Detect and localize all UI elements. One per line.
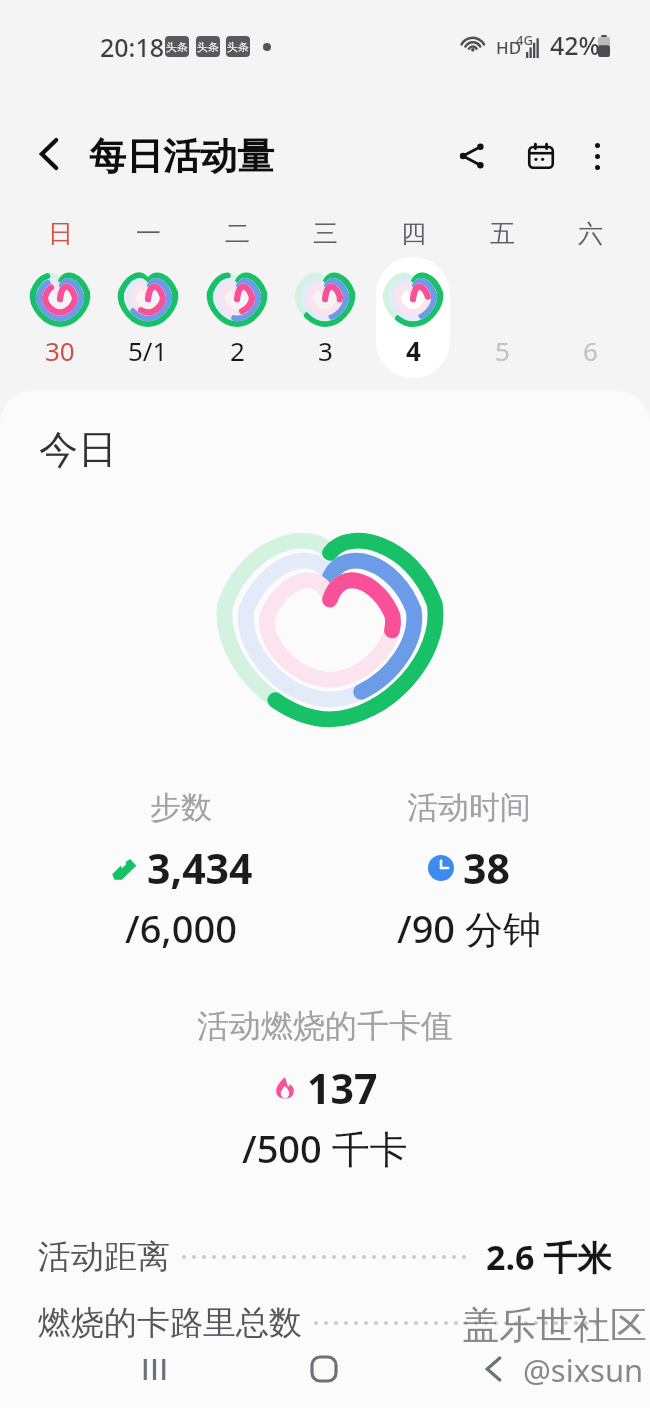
staticText: 2 xyxy=(230,333,245,367)
staticText: /6,000 xyxy=(125,902,237,954)
button[interactable]: 4 xyxy=(377,333,449,367)
button[interactable]: 6 xyxy=(554,333,626,367)
staticText: 盖乐世社区 xyxy=(462,1302,647,1349)
button[interactable]: 2 xyxy=(201,333,273,367)
button[interactable]: Home xyxy=(296,1341,352,1397)
staticText: 30 xyxy=(45,333,75,367)
button[interactable]: Recent apps xyxy=(126,1341,182,1397)
button[interactable]: 三 xyxy=(295,218,355,248)
button[interactable]: 3 xyxy=(289,333,361,367)
staticText: 三 xyxy=(313,218,338,248)
staticText: 20:18 xyxy=(100,30,165,64)
staticText: 头条 xyxy=(227,40,249,54)
staticText: HD xyxy=(496,36,522,59)
button[interactable]: 一 xyxy=(118,218,178,248)
staticText: 2.6 千米 xyxy=(486,1234,612,1280)
staticText: 步数 xyxy=(150,788,212,827)
staticText: 137 xyxy=(307,1060,378,1116)
staticText: 5 xyxy=(495,333,510,367)
staticText: 燃烧的卡路里总数 xyxy=(38,1302,302,1344)
staticText: 一 xyxy=(136,218,161,248)
staticText: 4 xyxy=(406,333,421,367)
staticText: 5/1 xyxy=(128,333,168,367)
staticText: 4G xyxy=(516,31,533,49)
staticText: 四 xyxy=(401,218,426,248)
staticText: 五 xyxy=(490,218,515,248)
button[interactable]: 步数 xyxy=(37,788,325,954)
button[interactable]: Share xyxy=(446,130,498,182)
button[interactable]: 二 xyxy=(207,218,267,248)
button[interactable]: 5/1 xyxy=(112,333,184,367)
button[interactable]: 六 xyxy=(560,218,620,248)
staticText: 3,434 xyxy=(147,840,253,896)
staticText: 活动燃烧的千卡值 xyxy=(197,1006,453,1046)
button[interactable]: Calendar xyxy=(515,130,567,182)
staticText: 今日 xyxy=(39,425,117,474)
staticText: 3 xyxy=(318,333,333,367)
staticText: 六 xyxy=(578,218,603,248)
button[interactable]: 五 xyxy=(472,218,532,248)
staticText: 二 xyxy=(225,218,250,248)
button[interactable]: 5 xyxy=(466,333,538,367)
button[interactable]: Back xyxy=(465,1341,521,1397)
button[interactable]: 活动时间 xyxy=(325,788,613,954)
button[interactable]: More options xyxy=(573,132,621,180)
staticText: 头条 xyxy=(166,40,188,54)
staticText: 头条 xyxy=(197,40,219,54)
button[interactable]: 日 xyxy=(30,218,90,248)
staticText: 日 xyxy=(48,218,73,248)
staticText: 6 xyxy=(583,333,598,367)
button[interactable]: 30 xyxy=(24,333,96,367)
staticText: /90 分钟 xyxy=(397,902,541,954)
button[interactable]: 活动距离 xyxy=(38,1234,612,1280)
staticText: /500 千卡 xyxy=(242,1122,408,1174)
button[interactable]: 四 xyxy=(383,218,443,248)
button[interactable]: Back xyxy=(23,128,75,180)
staticText: 活动距离 xyxy=(38,1236,170,1278)
staticText: @sixsun xyxy=(523,1349,644,1391)
staticText: 38 xyxy=(463,840,510,896)
staticText: 42% xyxy=(550,28,600,62)
staticText: 活动时间 xyxy=(407,788,531,827)
staticText: 每日活动量 xyxy=(89,133,274,180)
button[interactable]: 燃烧的卡路里总数 xyxy=(38,1300,612,1346)
